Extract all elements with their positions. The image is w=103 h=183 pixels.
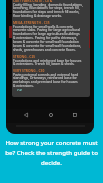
button[interactable]: Home: [45, 109, 56, 120]
staticText: C40 / FIBRE-CRETE - C0 &: [13, 0, 53, 2]
button[interactable]: Recents: [69, 109, 80, 120]
staticText: Foundations and reinforced base for hous…: [13, 58, 82, 66]
staticText: Foundations for small walls & concrete c…: [13, 24, 82, 52]
button[interactable]: Back: [20, 109, 31, 120]
staticText: MEGA-STRENGTH - C35: [13, 20, 50, 24]
staticText: VERY STRONG - C30: [13, 68, 45, 72]
staticText: STRONG - C25: [13, 54, 36, 58]
staticText: Cavity filling, bending, domestic founda…: [13, 2, 83, 18]
staticText: OK: [17, 88, 22, 91]
staticText: Paving external screeds and external har…: [13, 72, 79, 88]
staticText: How strong your concrete must be? Check …: [3, 138, 100, 167]
button[interactable]: OK: [17, 88, 22, 91]
